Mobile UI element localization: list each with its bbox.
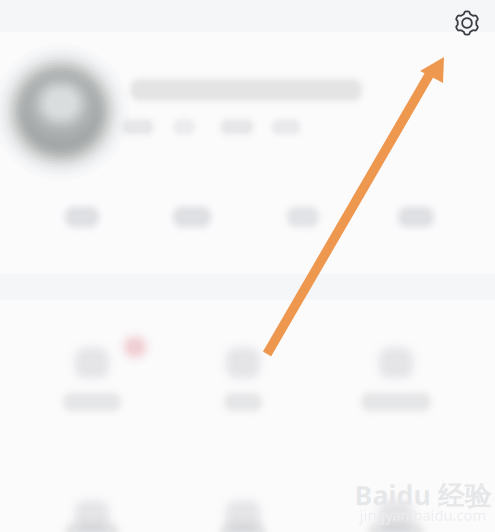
button[interactable] xyxy=(32,476,152,532)
staticText: jingyan.baidu.com xyxy=(359,505,486,525)
button[interactable] xyxy=(336,323,456,403)
button[interactable]: Settings xyxy=(445,1,489,45)
staticText: Baidu 经验 xyxy=(354,477,491,513)
button[interactable] xyxy=(183,476,303,532)
button[interactable] xyxy=(336,476,456,532)
button[interactable] xyxy=(32,323,152,403)
button[interactable] xyxy=(183,323,303,403)
